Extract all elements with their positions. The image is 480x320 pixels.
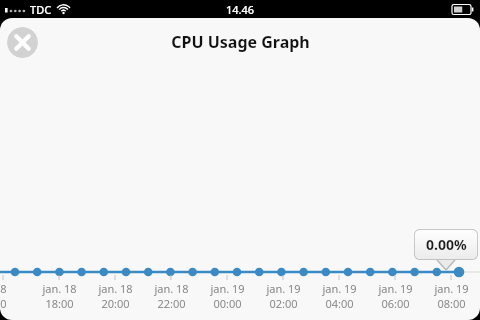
staticText: 20:00 bbox=[101, 296, 130, 311]
staticText: 08:00 bbox=[437, 296, 466, 311]
staticText: 00:00 bbox=[213, 296, 242, 311]
staticText: 0.00% bbox=[426, 235, 467, 254]
staticText: 02:00 bbox=[269, 296, 298, 311]
staticText: 06:00 bbox=[381, 296, 410, 311]
staticText: jan. 19 bbox=[322, 281, 357, 296]
staticText: TDC bbox=[30, 2, 52, 17]
staticText: 8 bbox=[0, 281, 7, 296]
staticText: jan. 19 bbox=[434, 281, 469, 296]
staticText: jan. 18 bbox=[98, 281, 133, 296]
staticText: CPU Usage Graph bbox=[171, 31, 310, 53]
staticText: 0 bbox=[0, 296, 7, 311]
staticText: jan. 19 bbox=[378, 281, 413, 296]
button[interactable]: Close bbox=[7, 27, 38, 58]
staticText: jan. 19 bbox=[266, 281, 301, 296]
staticText: 22:00 bbox=[157, 296, 186, 311]
staticText: jan. 18 bbox=[42, 281, 77, 296]
staticText: 18:00 bbox=[45, 296, 74, 311]
staticText: jan. 19 bbox=[210, 281, 245, 296]
staticText: jan. 18 bbox=[154, 281, 189, 296]
staticText: 04:00 bbox=[325, 296, 354, 311]
staticText: 14.46 bbox=[226, 2, 255, 17]
